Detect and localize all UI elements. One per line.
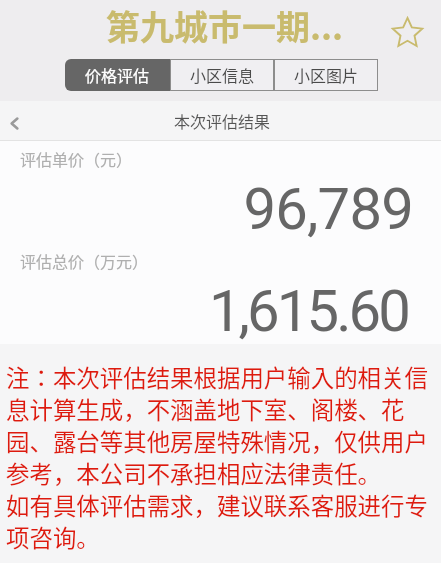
staticText: 价格评估 [85, 63, 150, 86]
button[interactable]: Back [0, 101, 29, 141]
button[interactable]: 小区信息 [170, 59, 274, 91]
staticText: 小区图片 [294, 63, 359, 86]
button[interactable]: 价格评估 [65, 59, 170, 91]
staticText: 注：本次评估结果根据用户输入的相关信 [6, 360, 428, 394]
staticText: 96,789 [0, 175, 413, 243]
staticText: 小区信息 [190, 63, 255, 86]
staticText: 参考，本公司不承担相应法律责任。 [6, 456, 381, 490]
button[interactable]: 小区图片 [274, 59, 378, 91]
staticText: 本次评估结果 [174, 109, 271, 132]
staticText: 项咨询。 [6, 520, 100, 554]
staticText: 如有具体评估需求，建议联系客服进行专 [6, 488, 428, 522]
staticText: 息计算生成，不涵盖地下室、阁楼、花 [6, 392, 405, 426]
button[interactable]: Favorite [391, 16, 423, 48]
staticText: 1,615.60 [0, 277, 408, 345]
staticText: 评估单价（元） [20, 147, 133, 170]
staticText: 第九城市一期... [106, 1, 344, 50]
staticText: 园、露台等其他房屋特殊情况，仅供用户 [6, 424, 428, 458]
staticText: 评估总价（万元） [20, 249, 149, 272]
